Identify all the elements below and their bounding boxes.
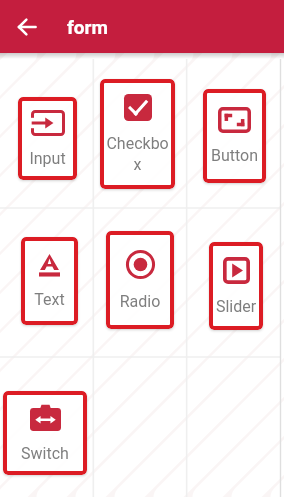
staticText: Text <box>25 290 74 309</box>
button[interactable]: Slider <box>209 242 263 330</box>
staticText: Checkbox <box>104 134 171 174</box>
staticText: Switch <box>7 444 83 463</box>
staticText: Slider <box>213 297 259 316</box>
button[interactable]: Input <box>18 97 77 180</box>
staticText: Radio <box>110 292 170 311</box>
button[interactable]: Switch <box>3 391 87 475</box>
button[interactable]: Radio <box>106 231 174 329</box>
staticText: Button <box>207 146 262 165</box>
staticText: form <box>67 16 108 38</box>
button[interactable]: Back <box>8 8 46 46</box>
button[interactable]: Checkbox <box>100 79 175 189</box>
button[interactable]: Text <box>21 237 78 325</box>
staticText: Input <box>22 149 73 168</box>
button[interactable]: Button <box>203 89 266 183</box>
